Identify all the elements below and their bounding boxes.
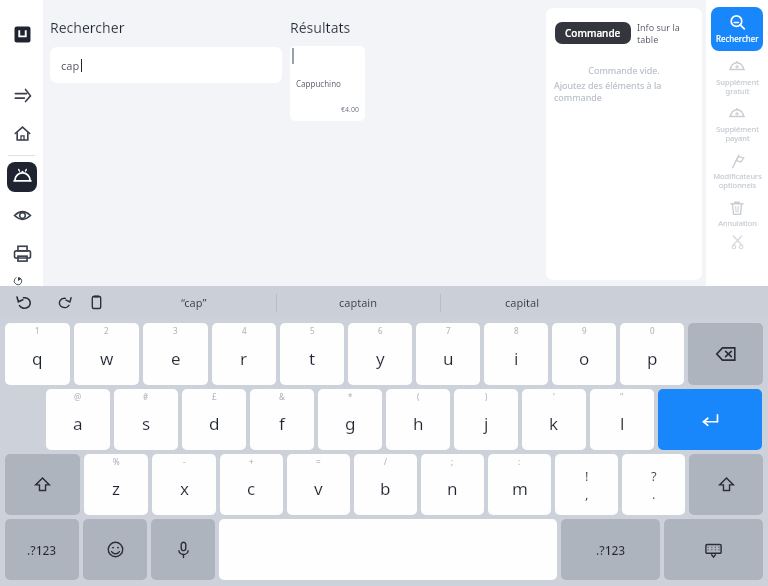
staticText: “cap” — [181, 295, 207, 310]
staticText: y — [376, 347, 385, 370]
staticText: e — [171, 347, 181, 370]
staticText: - — [183, 456, 186, 467]
staticText: 6 — [378, 325, 383, 336]
button[interactable]: & — [250, 389, 314, 450]
button[interactable]: Cappuchino — [290, 46, 365, 121]
button[interactable]: ( — [386, 389, 450, 450]
button[interactable]: Preview — [7, 200, 37, 230]
staticText: d — [209, 412, 220, 435]
button[interactable]: “cap” — [112, 286, 276, 319]
button[interactable]: Rechercher — [711, 7, 763, 51]
button[interactable]: .?123 — [561, 519, 660, 580]
staticText: " — [620, 391, 624, 402]
button[interactable]: - — [152, 454, 216, 515]
button[interactable]: Transfer — [7, 80, 37, 110]
button[interactable]: Paste — [80, 286, 112, 319]
staticText: b — [380, 477, 391, 500]
button[interactable]: @ — [46, 389, 110, 450]
button[interactable]: Paid supplement — [711, 98, 763, 145]
button[interactable]: # — [114, 389, 178, 450]
button[interactable]: ) — [454, 389, 518, 450]
staticText: % — [113, 456, 120, 467]
button[interactable]: Info sur la table — [631, 17, 702, 49]
button[interactable]: Orders — [7, 162, 37, 192]
button[interactable]: 8 — [484, 323, 548, 385]
button[interactable]: 2 — [74, 323, 139, 385]
staticText: # — [143, 391, 149, 402]
staticText: / — [384, 456, 387, 467]
staticText: t — [309, 347, 316, 370]
button[interactable]: % — [84, 454, 148, 515]
button[interactable]: Emoji — [83, 519, 147, 580]
staticText: f — [279, 412, 285, 435]
staticText: u — [443, 347, 454, 370]
button[interactable]: 3 — [143, 323, 208, 385]
staticText: j — [484, 412, 489, 435]
button[interactable]: 0 — [620, 323, 684, 385]
staticText: ) — [485, 391, 488, 402]
button[interactable]: Hide keyboard — [664, 519, 763, 580]
button[interactable]: + — [220, 454, 283, 515]
staticText: Commande — [565, 26, 621, 40]
staticText: Cappuchino — [296, 78, 341, 89]
button[interactable]: ; — [421, 454, 484, 515]
button[interactable]: : — [488, 454, 551, 515]
staticText: * — [348, 391, 353, 402]
button[interactable]: Free supplement — [711, 51, 763, 98]
button[interactable]: .?123 — [5, 519, 79, 580]
button[interactable]: Voice input — [151, 519, 215, 580]
button[interactable]: 7 — [416, 323, 480, 385]
button[interactable]: 5 — [280, 323, 344, 385]
button[interactable]: Backspace — [688, 323, 763, 385]
staticText: Annulation — [718, 218, 757, 228]
button[interactable]: Cancel — [711, 192, 763, 230]
button[interactable]: 6 — [348, 323, 412, 385]
staticText: i — [514, 347, 519, 370]
button[interactable]: 4 — [212, 323, 276, 385]
staticText: cap — [61, 58, 80, 73]
button[interactable]: Enter — [658, 389, 762, 450]
button[interactable]: 1 — [5, 323, 70, 385]
button[interactable]: cap — [50, 47, 282, 83]
staticText: z — [112, 477, 120, 500]
staticText: v — [314, 477, 323, 500]
button[interactable]: Home — [7, 118, 37, 148]
button[interactable]: App logo — [7, 19, 37, 49]
button[interactable]: * — [318, 389, 382, 450]
button[interactable]: = — [287, 454, 350, 515]
button[interactable]: Undo — [0, 286, 48, 319]
button[interactable]: Shift — [689, 454, 763, 515]
staticText: p — [647, 347, 658, 370]
button[interactable]: capital — [440, 286, 604, 319]
staticText: Supplément payant — [716, 124, 759, 143]
button[interactable]: Shift — [5, 454, 80, 515]
staticText: 2 — [104, 325, 109, 336]
button[interactable]: Reports — [7, 276, 37, 286]
button[interactable]: Print — [7, 238, 37, 268]
staticText: 9 — [582, 325, 587, 336]
staticText: @ — [74, 391, 82, 402]
staticText: + — [249, 456, 254, 467]
staticText: ' — [553, 391, 555, 402]
button[interactable]: £ — [182, 389, 246, 450]
button[interactable]: ? — [622, 454, 685, 515]
button[interactable]: Commande — [555, 22, 631, 44]
staticText: Commande vide. — [546, 64, 702, 76]
staticText: .?123 — [596, 542, 626, 558]
button[interactable]: captain — [276, 286, 440, 319]
button[interactable]: 9 — [552, 323, 616, 385]
button[interactable]: " — [590, 389, 654, 450]
staticText: l — [620, 412, 625, 435]
button[interactable]: Redo — [48, 286, 80, 319]
staticText: Rechercher — [716, 33, 759, 44]
button[interactable]: ' — [522, 389, 586, 450]
staticText: ? — [651, 467, 657, 485]
staticText: 4 — [242, 325, 247, 336]
button[interactable]: ! — [555, 454, 618, 515]
staticText: o — [579, 347, 590, 370]
staticText: ; — [451, 456, 454, 467]
staticText: k — [549, 412, 559, 435]
button[interactable]: Optional modifiers — [711, 145, 763, 192]
button[interactable]: / — [354, 454, 417, 515]
